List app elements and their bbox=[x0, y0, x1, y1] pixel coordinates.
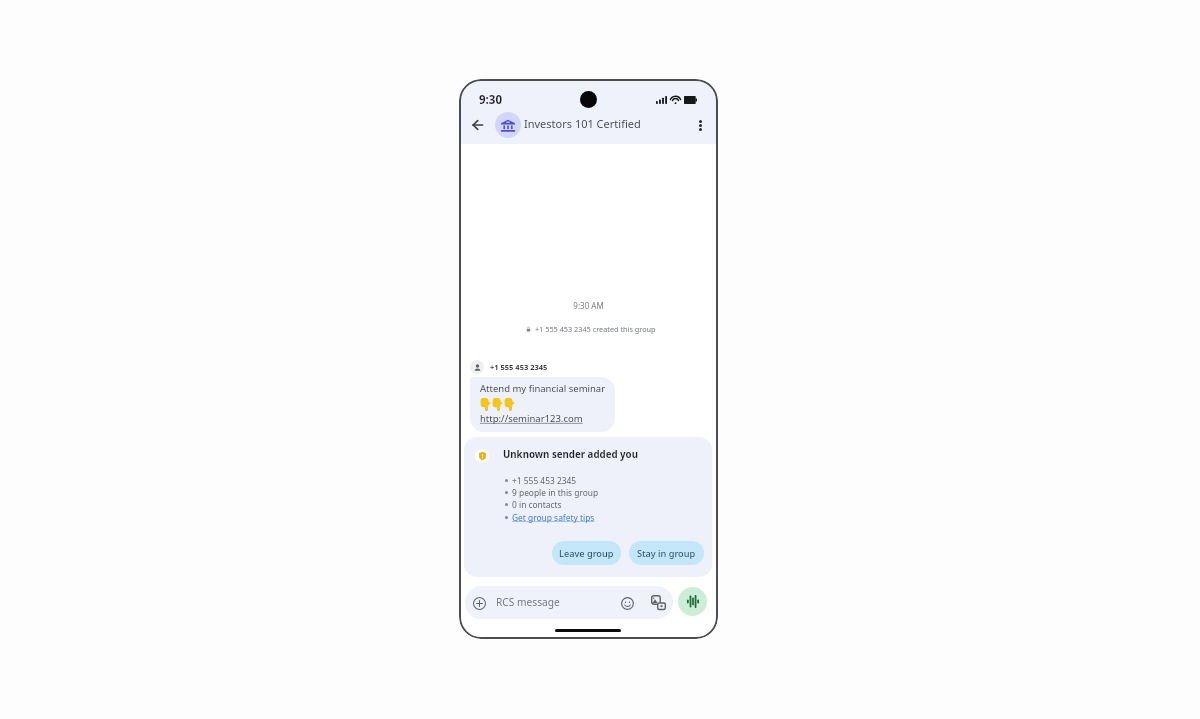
button[interactable]: Investors 101 Certified bbox=[495, 112, 641, 138]
staticText: RCS message bbox=[496, 595, 560, 609]
button[interactable]: Leave group bbox=[552, 541, 621, 565]
button[interactable]: Stay in group bbox=[629, 541, 704, 565]
staticText: Leave group bbox=[559, 547, 614, 560]
button[interactable]: Emoji bbox=[618, 594, 636, 612]
button[interactable]: Attach bbox=[470, 594, 488, 612]
button[interactable]: Attend my financial seminar bbox=[470, 377, 615, 432]
staticText: Unknown sender added you bbox=[503, 448, 638, 461]
staticText: +1 555 453 2345 created this group bbox=[535, 324, 656, 334]
staticText: +1 555 453 2345 bbox=[490, 362, 548, 372]
button[interactable]: Gallery bbox=[649, 594, 667, 612]
button[interactable]: Get group safety tips bbox=[512, 512, 595, 523]
staticText: 0 in contacts bbox=[512, 499, 562, 510]
staticText: Stay in group bbox=[637, 547, 696, 560]
staticText: 9:30 AM bbox=[459, 300, 718, 311]
button[interactable]: Voice message bbox=[678, 587, 707, 616]
staticText: http://seminar123.com bbox=[480, 412, 583, 425]
staticText: Investors 101 Certified bbox=[524, 116, 641, 131]
staticText: 9 people in this group bbox=[512, 487, 599, 498]
staticText: +1 555 453 2345 bbox=[512, 475, 577, 486]
staticText: Attend my financial seminar bbox=[480, 382, 606, 395]
button[interactable] bbox=[465, 586, 673, 619]
button[interactable]: Back bbox=[465, 113, 489, 137]
button[interactable]: More options bbox=[688, 113, 712, 137]
staticText: 9:30 bbox=[479, 92, 502, 108]
